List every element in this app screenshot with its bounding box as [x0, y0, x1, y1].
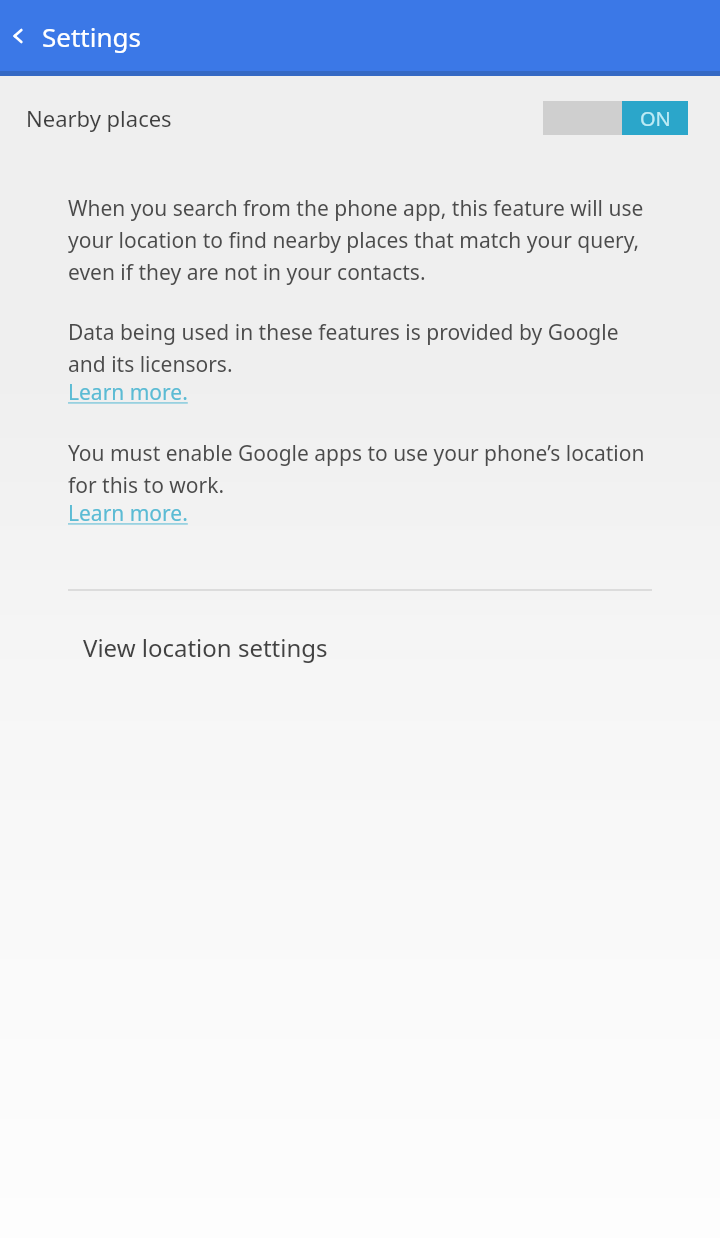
staticText: You must enable Google apps to use your … — [68, 439, 658, 499]
staticText: Settings — [42, 19, 141, 54]
staticText: Learn more. — [68, 378, 188, 407]
staticText: ON — [640, 105, 671, 132]
staticText: When you search from the phone app, this… — [68, 194, 658, 286]
staticText: Learn more. — [68, 499, 188, 528]
button[interactable]: Nearby places on — [543, 101, 688, 135]
button[interactable]: Learn more. — [68, 499, 188, 528]
button[interactable]: Learn more. — [68, 378, 188, 407]
button[interactable]: Back — [0, 0, 38, 71]
button[interactable]: View location settings — [0, 591, 720, 703]
staticText: Nearby places — [26, 103, 172, 133]
staticText: View location settings — [83, 631, 328, 664]
staticText: Data being used in these features is pro… — [68, 318, 658, 378]
button[interactable]: Nearby places — [0, 76, 720, 160]
